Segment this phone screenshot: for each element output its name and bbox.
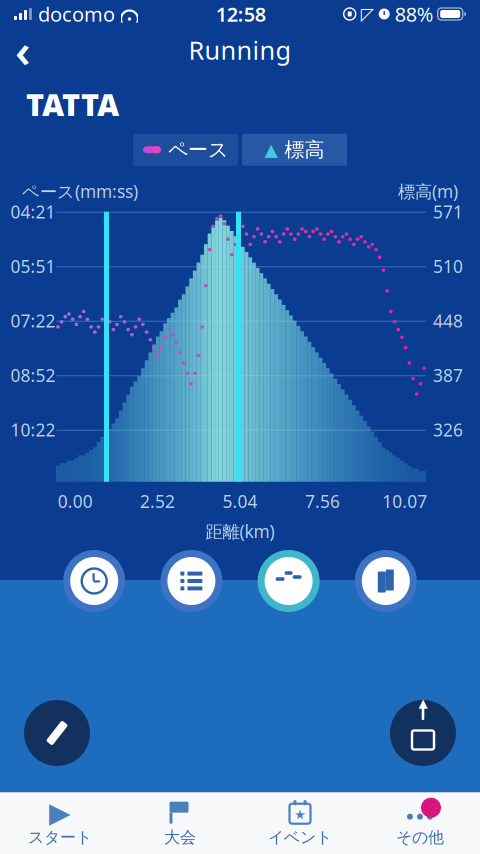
staticText: 10:22 (10, 418, 55, 441)
staticText: 0.00 (58, 490, 93, 513)
button[interactable]: 戻る (0, 28, 46, 72)
staticText: ▶ (49, 797, 71, 829)
staticText: ◸ (361, 4, 374, 24)
staticText: 標高 (284, 137, 324, 162)
staticText: イベント (268, 828, 332, 847)
staticText: 04:21 (10, 200, 55, 223)
button[interactable]: ▶ (0, 794, 120, 853)
staticText: スタート (28, 828, 92, 847)
staticText: 12:58 (216, 1, 266, 27)
button[interactable]: タイム (63, 550, 125, 612)
staticText: ペース(mm:ss) (22, 180, 138, 203)
staticText: 88% (395, 1, 434, 27)
button[interactable]: グラフ (258, 550, 320, 612)
staticText: ▲ (264, 140, 277, 160)
button[interactable]: 共有 (390, 700, 456, 766)
staticText: 大会 (164, 828, 196, 847)
staticText: 10.07 (382, 490, 427, 513)
staticText: 08:52 (10, 364, 55, 387)
staticText: 標高(m) (398, 180, 458, 203)
staticText: 5.04 (222, 490, 257, 513)
button[interactable]: ★ (240, 794, 360, 853)
staticText: 距離(km) (205, 520, 274, 543)
staticText: 05:51 (10, 255, 55, 278)
staticText: TATTA (26, 84, 119, 125)
button[interactable]: マップ (355, 550, 417, 612)
button[interactable]: 大会 (120, 794, 240, 853)
staticText: ▲ (418, 696, 427, 710)
staticText: その他 (396, 828, 444, 847)
staticText: ‹ (15, 20, 31, 80)
staticText: 387 (433, 364, 463, 387)
staticText: 07:22 (10, 309, 55, 332)
staticText: 7.56 (305, 490, 340, 513)
staticText: Running (188, 33, 291, 67)
staticText: 571 (433, 200, 463, 223)
staticText: ペース (168, 137, 228, 162)
button[interactable]: ▲ (242, 134, 347, 166)
button[interactable]: その他 (360, 794, 480, 853)
staticText: 510 (433, 255, 463, 278)
staticText: 2.52 (140, 490, 175, 513)
staticText: ★ (294, 807, 306, 822)
button[interactable]: ペース (133, 134, 238, 166)
button[interactable]: ラップ (160, 550, 222, 612)
staticText: 326 (433, 418, 463, 441)
staticText: 448 (433, 309, 463, 332)
staticText: docomo (38, 1, 115, 27)
button[interactable]: 編集 (24, 700, 90, 766)
